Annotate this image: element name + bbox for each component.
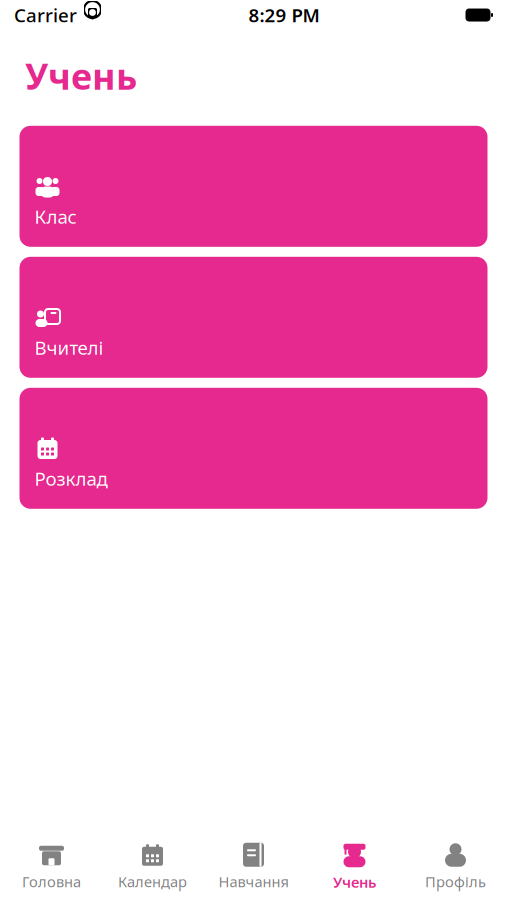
staticText: Головна <box>22 872 81 891</box>
staticText: 8:29 PM <box>248 3 319 27</box>
staticText: Календар <box>118 872 187 891</box>
staticText: Навчання <box>218 872 288 891</box>
staticText: Учень <box>333 872 376 892</box>
button[interactable]: Навчання <box>203 836 304 898</box>
staticText: Профіль <box>425 872 486 891</box>
button[interactable]: Календар <box>102 836 203 898</box>
staticText: Вчителі <box>34 335 103 360</box>
button[interactable]: Профіль <box>405 836 506 898</box>
button[interactable]: Клас <box>19 126 487 247</box>
button[interactable]: Головна <box>1 836 102 898</box>
button[interactable]: Учень <box>304 836 405 898</box>
staticText: Розклад <box>34 466 107 491</box>
staticText: Клас <box>34 204 76 229</box>
button[interactable]: Вчителі <box>19 257 487 378</box>
button[interactable]: Розклад <box>19 388 487 509</box>
staticText: Учень <box>25 52 137 100</box>
staticText: Carrier <box>14 3 77 27</box>
